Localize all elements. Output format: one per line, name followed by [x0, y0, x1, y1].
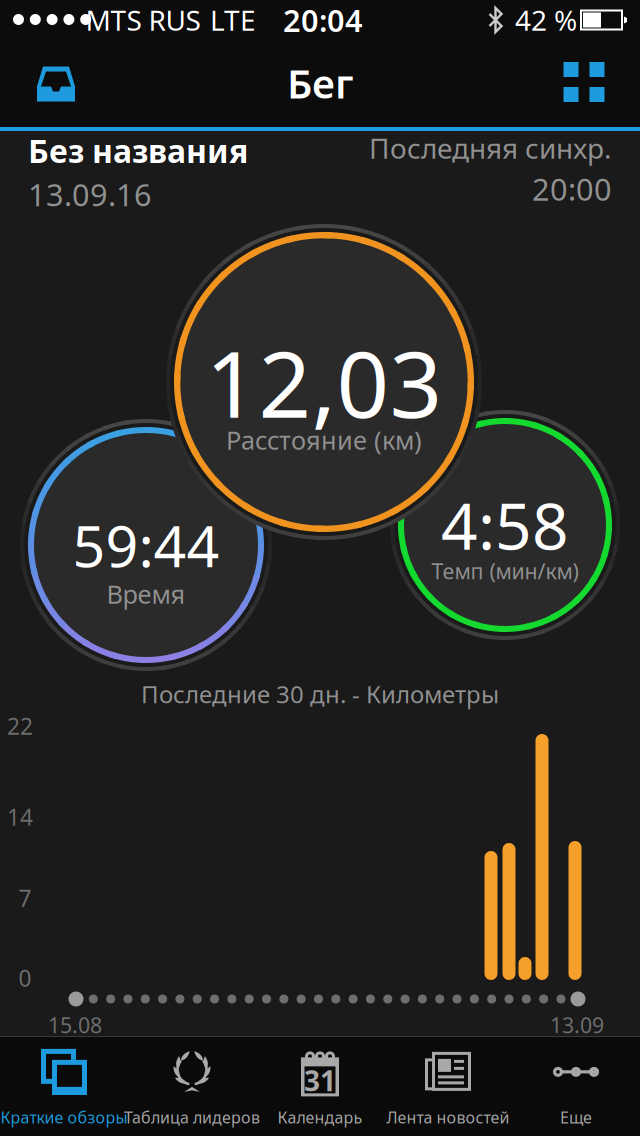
staticText: Лента новостей — [386, 1107, 509, 1128]
button[interactable]: Входящие — [11, 44, 101, 124]
staticText: 59:44 — [72, 507, 219, 583]
staticText: Последние 30 дн. - Километры — [141, 678, 499, 710]
staticText: Расстояние (км) — [226, 423, 422, 457]
button[interactable]: Лента новостей — [384, 1037, 512, 1136]
staticText: LTE — [210, 1, 256, 39]
staticText: Последняя синхр. — [369, 129, 612, 167]
staticText: 15.08 — [48, 1011, 102, 1039]
staticText: 31 — [304, 1062, 336, 1099]
button[interactable]: Сетка — [539, 42, 629, 122]
staticText: 12,03 — [205, 321, 442, 443]
staticText: 20:00 — [532, 169, 612, 209]
staticText: Еще — [560, 1107, 592, 1128]
staticText: Бег — [287, 56, 353, 109]
staticText: Таблица лидеров — [124, 1107, 260, 1128]
staticText: 22 — [7, 711, 33, 741]
staticText: 42 % — [515, 1, 577, 39]
staticText: 13.09.16 — [28, 174, 152, 215]
staticText: Краткие обзоры — [0, 1107, 127, 1128]
staticText: Без названия — [28, 129, 248, 172]
staticText: Темп (мин/км) — [431, 557, 578, 585]
staticText: Календарь — [277, 1107, 362, 1128]
staticText: 13.09 — [550, 1011, 604, 1039]
button[interactable]: Таблица лидеров — [128, 1037, 256, 1136]
button[interactable]: 31 — [256, 1037, 384, 1136]
staticText: 4:58 — [441, 482, 569, 567]
staticText: 14 — [7, 802, 33, 832]
button[interactable]: Краткие обзоры — [0, 1037, 128, 1136]
staticText: Время — [106, 577, 185, 611]
staticText: 0 — [18, 963, 31, 993]
staticText: 20:04 — [283, 0, 363, 40]
staticText: MTS RUS — [85, 1, 200, 39]
button[interactable]: Еще — [512, 1037, 640, 1136]
staticText: 7 — [18, 883, 31, 913]
